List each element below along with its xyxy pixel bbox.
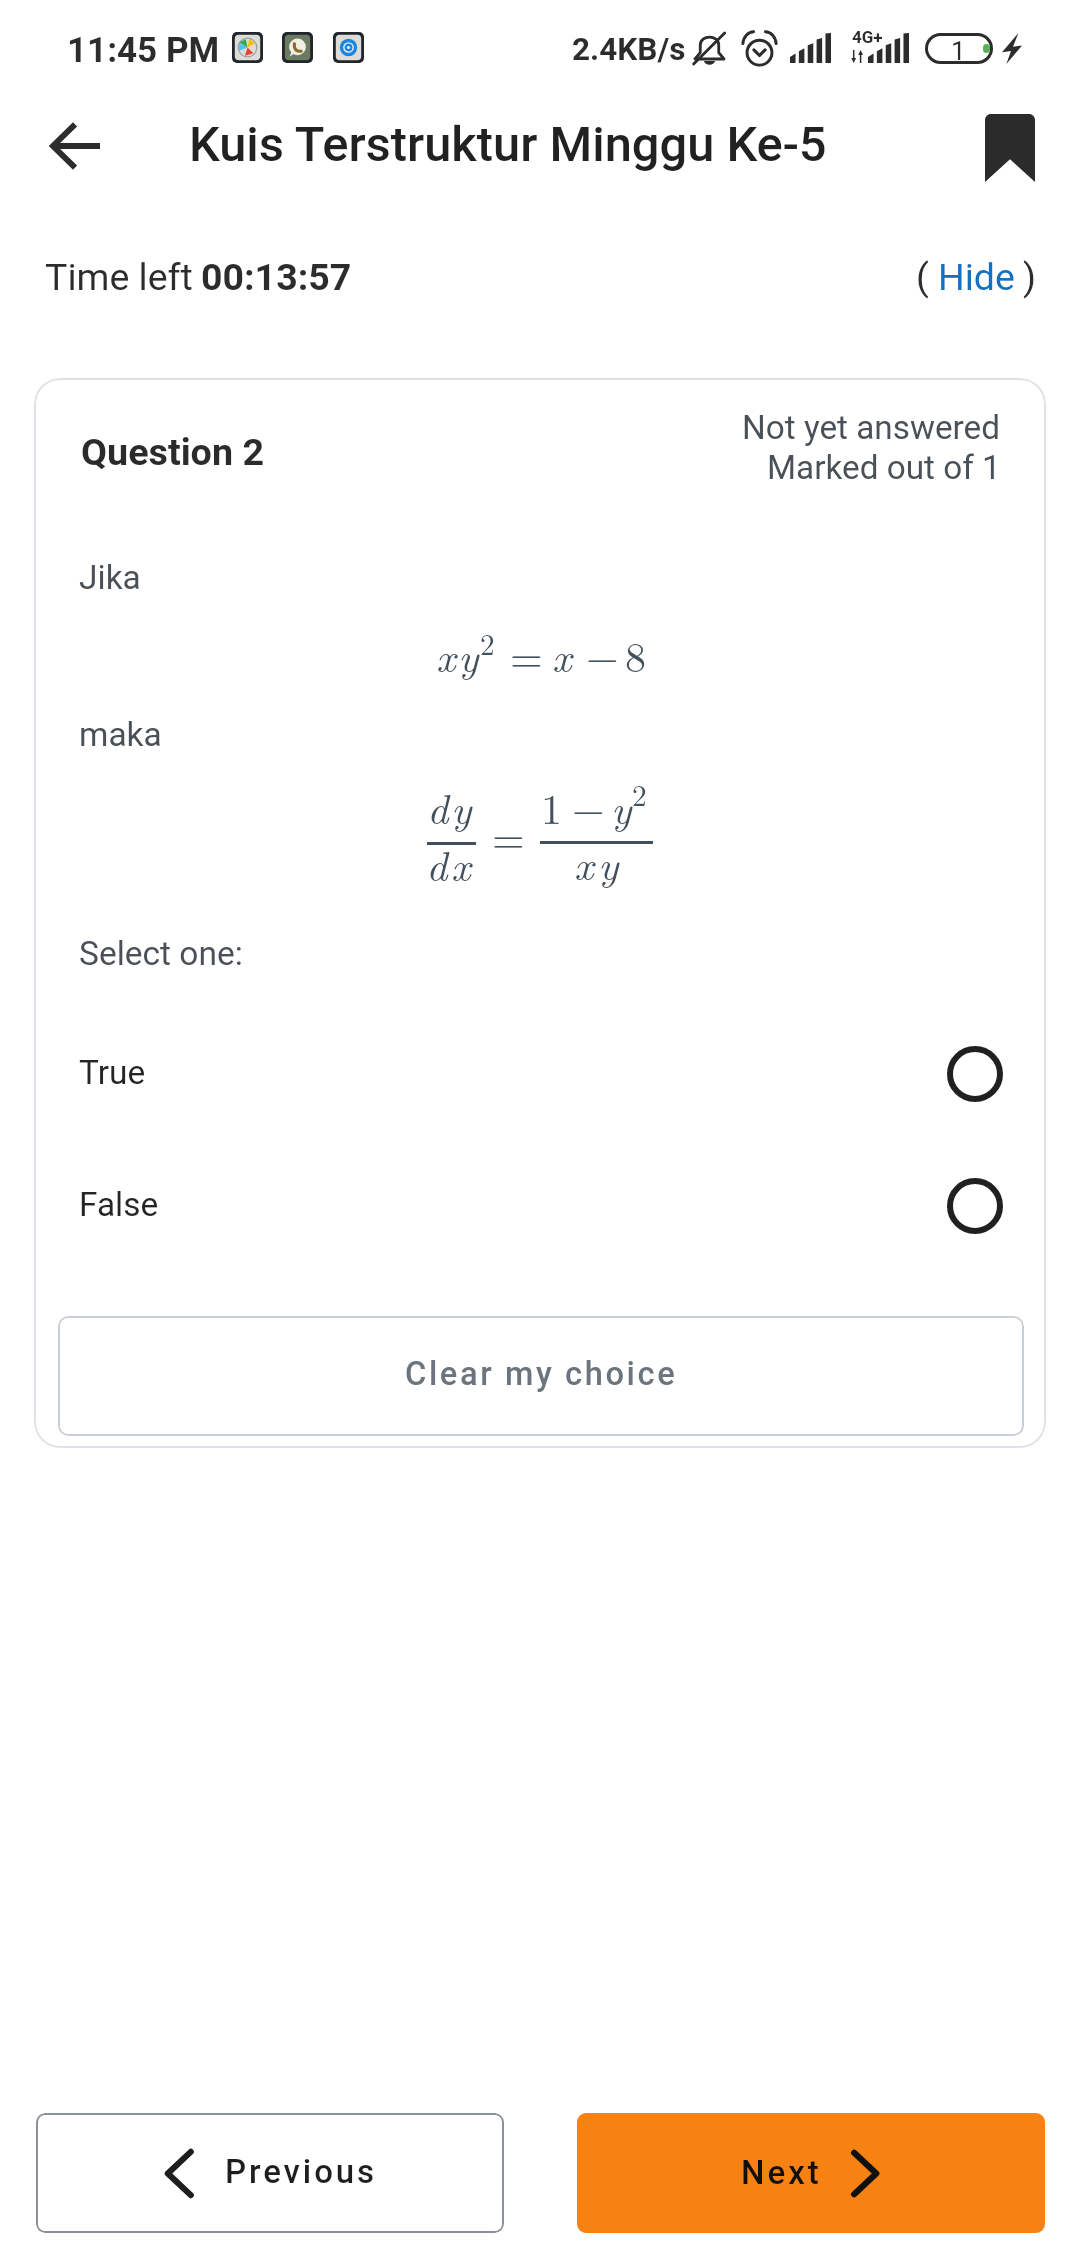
- staticText: x: [574, 833, 594, 892]
- staticText: Time left: [45, 255, 193, 299]
- staticText: x: [451, 834, 471, 893]
- staticText: 1: [541, 777, 563, 837]
- staticText: d: [427, 777, 449, 836]
- staticText: 11:45 PM: [67, 30, 220, 71]
- button[interactable]: Next: [577, 2113, 1045, 2233]
- staticText: −: [572, 777, 605, 837]
- staticText: −: [586, 625, 619, 685]
- button[interactable]: True: [34, 1030, 1046, 1118]
- button[interactable]: Back: [28, 98, 124, 194]
- staticText: maka: [79, 715, 162, 754]
- staticText: Not yet answered: [742, 408, 1001, 447]
- staticText: Hide: [938, 255, 1015, 299]
- staticText: False: [79, 1185, 159, 1224]
- staticText: x: [436, 625, 456, 684]
- staticText: 8: [625, 625, 647, 685]
- staticText: 00:13:57: [201, 255, 352, 299]
- staticText: y: [598, 833, 619, 892]
- staticText: Marked out of 1: [767, 448, 1001, 487]
- staticText: (: [916, 255, 929, 299]
- staticText: 2: [480, 622, 495, 664]
- staticText: y: [458, 625, 479, 684]
- staticText: Select one:: [79, 934, 243, 973]
- staticText: True: [79, 1053, 146, 1092]
- staticText: Clear my choice: [405, 1355, 678, 1393]
- staticText: 2: [632, 773, 647, 815]
- button[interactable]: False: [34, 1162, 1046, 1250]
- staticText: 1: [951, 36, 966, 66]
- staticText: ): [1023, 255, 1037, 299]
- staticText: d: [426, 834, 448, 893]
- staticText: x: [552, 625, 572, 684]
- staticText: Previous: [225, 2152, 378, 2191]
- staticText: Next: [741, 2153, 822, 2192]
- staticText: 4G+: [852, 27, 883, 47]
- staticText: Jika: [79, 558, 141, 597]
- staticText: =: [492, 806, 525, 866]
- staticText: 2.4KB/s: [572, 31, 686, 68]
- staticText: Question 2: [81, 430, 265, 474]
- button[interactable]: Clear my choice: [58, 1316, 1024, 1436]
- staticText: y: [451, 777, 472, 836]
- button[interactable]: Hide: [932, 252, 1018, 304]
- staticText: Kuis Terstruktur Minggu Ke-5: [189, 116, 827, 173]
- staticText: y: [611, 777, 632, 836]
- button[interactable]: Bookmark: [963, 98, 1057, 198]
- staticText: =: [510, 625, 543, 685]
- button[interactable]: Previous: [36, 2113, 504, 2233]
